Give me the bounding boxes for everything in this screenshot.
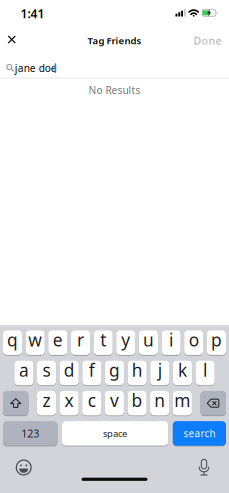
staticText: w: [28, 328, 42, 351]
button[interactable]: n: [150, 391, 169, 415]
staticText: jane doe: [15, 61, 57, 75]
button[interactable]: Delete: [201, 391, 226, 415]
staticText: o: [189, 328, 199, 351]
staticText: space: [103, 427, 127, 440]
staticText: search: [183, 427, 215, 440]
staticText: e: [53, 328, 63, 351]
staticText: No Results: [88, 83, 140, 97]
staticText: n: [154, 389, 165, 412]
staticText: h: [132, 358, 143, 381]
staticText: t: [100, 328, 106, 351]
button[interactable]: z: [37, 391, 56, 415]
staticText: i: [169, 328, 173, 351]
staticText: x: [65, 389, 74, 412]
staticText: j: [158, 358, 162, 381]
button[interactable]: h: [128, 361, 147, 385]
button[interactable]: x: [60, 391, 79, 415]
button[interactable]: j: [150, 361, 169, 385]
button[interactable]: c: [82, 391, 101, 415]
button[interactable]: u: [139, 330, 158, 355]
button[interactable]: 123: [3, 421, 57, 446]
button[interactable]: v: [105, 391, 124, 415]
staticText: u: [143, 328, 154, 351]
button[interactable]: l: [196, 361, 215, 385]
button[interactable]: o: [184, 330, 203, 355]
button[interactable]: b: [127, 391, 147, 415]
staticText: r: [77, 328, 84, 351]
button[interactable]: space: [62, 421, 168, 446]
button[interactable]: e: [48, 330, 67, 355]
staticText: d: [64, 358, 75, 381]
button[interactable]: Emoji: [16, 459, 32, 475]
staticText: k: [178, 358, 187, 381]
staticText: Tag Friends: [87, 34, 141, 47]
staticText: a: [19, 358, 29, 381]
button[interactable]: Dictation: [198, 459, 209, 476]
staticText: l: [203, 358, 207, 381]
staticText: s: [42, 358, 50, 381]
staticText: Done: [193, 33, 221, 48]
button[interactable]: t: [94, 330, 113, 355]
button[interactable]: s: [37, 361, 56, 385]
button[interactable]: d: [60, 361, 79, 385]
staticText: m: [174, 389, 190, 412]
button[interactable]: f: [82, 361, 101, 385]
staticText: c: [88, 389, 96, 412]
button[interactable]: p: [207, 330, 226, 355]
staticText: p: [211, 328, 222, 351]
staticText: q: [7, 328, 18, 351]
button[interactable]: w: [26, 330, 45, 355]
staticText: y: [121, 328, 130, 351]
button[interactable]: r: [71, 330, 90, 355]
staticText: z: [42, 389, 50, 412]
button[interactable]: a: [14, 361, 33, 385]
button[interactable]: g: [105, 361, 124, 385]
staticText: f: [89, 358, 95, 381]
staticText: b: [132, 389, 143, 412]
button[interactable]: y: [116, 330, 135, 355]
button[interactable]: i: [162, 330, 181, 355]
button[interactable]: m: [173, 391, 192, 415]
button[interactable]: q: [3, 330, 22, 355]
button[interactable]: k: [173, 361, 192, 385]
button[interactable]: Shift: [3, 391, 28, 415]
staticText: 1:41: [20, 5, 44, 21]
staticText: v: [110, 389, 119, 412]
button[interactable]: Done: [189, 29, 225, 52]
button[interactable]: search: [173, 421, 226, 446]
staticText: g: [109, 358, 120, 381]
staticText: 123: [21, 426, 39, 440]
button[interactable]: Close: [1, 29, 22, 50]
